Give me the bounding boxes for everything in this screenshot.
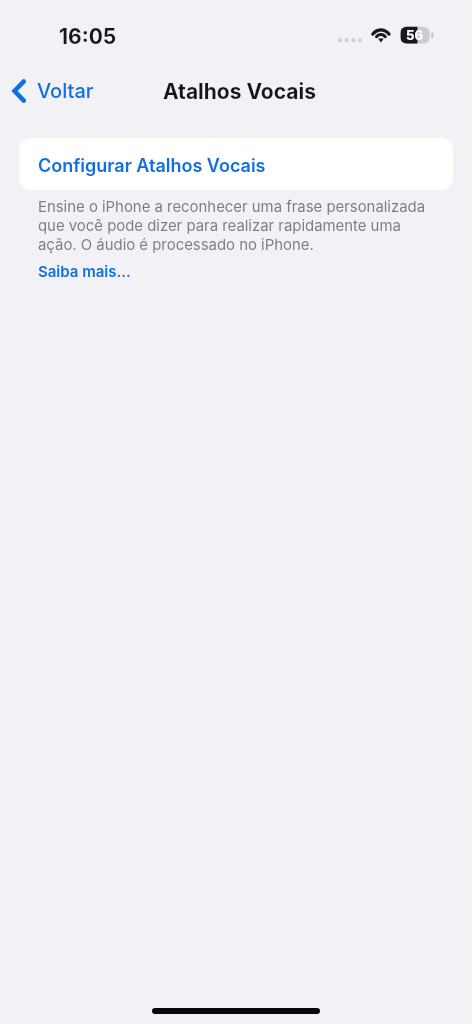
staticText: Voltar	[37, 79, 94, 103]
staticText: Ensine o iPhone a reconhecer uma frase p…	[38, 198, 436, 254]
staticText: Saiba mais...	[38, 262, 131, 280]
staticText: 16:05	[59, 24, 117, 49]
other: Voltar	[11, 78, 27, 104]
button[interactable]: Configurar Atalhos Vocais	[19, 138, 453, 190]
staticText: Configurar Atalhos Vocais	[38, 155, 266, 177]
staticText: 56	[406, 27, 424, 43]
staticText: Atalhos Vocais	[163, 79, 316, 104]
button[interactable]: Saiba mais...	[38, 262, 131, 280]
button[interactable]: Voltar	[6, 74, 99, 108]
